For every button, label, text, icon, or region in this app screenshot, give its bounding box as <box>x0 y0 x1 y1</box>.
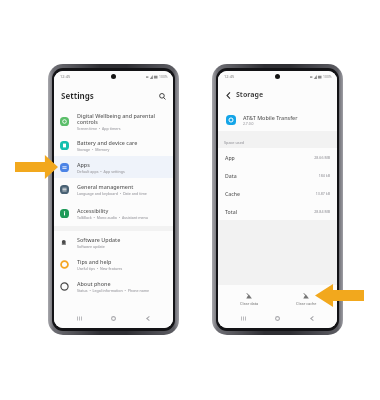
button[interactable]: Battery and device care <box>54 134 173 156</box>
button[interactable]: Clear cache <box>280 291 332 308</box>
staticText: AT&T Mobile Transfer <box>243 114 298 121</box>
staticText: Cache <box>225 190 315 197</box>
staticText: Software Update <box>77 236 121 243</box>
staticText: 100% <box>159 74 168 79</box>
staticText: 100% <box>323 74 332 79</box>
staticText: 28.66 MB <box>314 155 330 160</box>
button[interactable]: Apps <box>54 156 173 178</box>
staticText: Settings <box>61 90 94 101</box>
staticText: Battery and device care <box>77 139 138 146</box>
staticText: TalkBack • Mono audio • Assistant menu <box>77 215 149 220</box>
staticText: Storage <box>236 90 264 100</box>
button[interactable]: Accessibility <box>54 200 173 226</box>
button[interactable]: Data <box>218 166 337 184</box>
staticText: Total <box>225 208 314 215</box>
button[interactable]: Total <box>218 202 337 220</box>
button[interactable]: General management <box>54 178 173 200</box>
staticText: Digital Wellbeing and parental controls <box>77 112 168 125</box>
staticText: Tips and help <box>77 258 112 265</box>
button[interactable]: Back <box>223 90 233 100</box>
button[interactable]: Back <box>305 313 318 323</box>
staticText: General management <box>77 183 134 190</box>
staticText: Screen time • App timers <box>77 126 121 131</box>
staticText: Data <box>225 172 318 179</box>
button[interactable]: App <box>218 148 337 166</box>
staticText: Space used <box>224 140 245 145</box>
staticText: 28.84 MB <box>314 209 330 214</box>
staticText: 12:45 <box>60 74 71 79</box>
button[interactable]: Back <box>141 313 154 323</box>
staticText: 184 kB <box>318 173 330 178</box>
staticText: Default apps • App settings <box>77 169 125 174</box>
button[interactable]: AT&T Mobile Transfer <box>218 108 337 131</box>
staticText: About phone <box>77 280 111 287</box>
button[interactable]: Home <box>271 313 284 323</box>
button[interactable]: Digital Wellbeing and parental controls <box>54 109 173 134</box>
staticText: Apps <box>77 161 90 168</box>
staticText: Clear cache <box>296 301 317 306</box>
button[interactable]: Tips and help <box>54 253 173 275</box>
staticText: 13.87 kB <box>315 191 330 196</box>
staticText: Accessibility <box>77 207 109 214</box>
staticText: 12:45 <box>224 74 235 79</box>
staticText: App <box>225 154 314 161</box>
button[interactable]: Software Update <box>54 231 173 253</box>
button[interactable]: Recents <box>237 313 250 323</box>
staticText: 2.7.0.0 <box>243 121 254 126</box>
button[interactable]: Recents <box>73 313 86 323</box>
staticText: Useful tips • New features <box>77 266 123 271</box>
staticText: Language and keyboard • Date and time <box>77 191 147 196</box>
staticText: Storage • Memory <box>77 147 110 152</box>
button[interactable]: Home <box>107 313 120 323</box>
staticText: Clear data <box>240 301 259 306</box>
button[interactable]: Search <box>157 91 167 101</box>
button[interactable]: About phone <box>54 275 173 297</box>
staticText: Status • Legal information • Phone name <box>77 288 150 293</box>
staticText: Software update <box>77 244 105 249</box>
button[interactable]: Clear data <box>223 291 275 308</box>
button[interactable]: Cache <box>218 184 337 202</box>
